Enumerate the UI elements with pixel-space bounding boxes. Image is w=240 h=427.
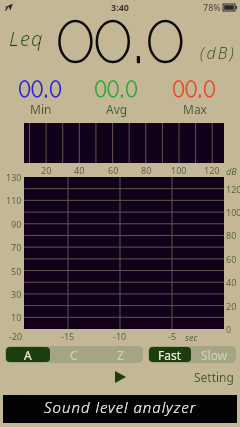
staticText: 70 bbox=[11, 241, 22, 253]
staticText: 0 bbox=[226, 323, 232, 335]
staticText: Z bbox=[117, 347, 124, 363]
button[interactable]: Fast bbox=[149, 347, 191, 362]
staticText: 120 bbox=[226, 183, 240, 195]
staticText: 40 bbox=[74, 164, 85, 176]
button[interactable]: Start measuring bbox=[108, 366, 132, 388]
staticText: 110 bbox=[6, 194, 22, 206]
staticText: 3:40 bbox=[111, 1, 129, 13]
staticText: Avg bbox=[106, 101, 128, 117]
staticText: Sound level analyzer bbox=[44, 397, 197, 417]
staticText: (dB) bbox=[200, 42, 237, 64]
button[interactable]: Z bbox=[97, 346, 143, 363]
staticText: 78% bbox=[203, 1, 221, 13]
staticText: 130 bbox=[6, 171, 22, 183]
staticText: dB bbox=[226, 165, 237, 177]
staticText: 100 bbox=[226, 206, 240, 218]
staticText: Leq bbox=[9, 25, 44, 52]
staticText: -20 bbox=[9, 330, 23, 342]
staticText: Min bbox=[30, 101, 52, 117]
button[interactable]: Sound level analyzer bbox=[3, 395, 237, 423]
button[interactable]: Slow bbox=[192, 346, 236, 363]
staticText: -5 bbox=[168, 330, 177, 342]
staticText: 20 bbox=[41, 164, 52, 176]
staticText: 80 bbox=[226, 229, 237, 241]
staticText: -10 bbox=[113, 330, 127, 342]
staticText: 100 bbox=[171, 164, 187, 176]
staticText: sec bbox=[185, 331, 198, 343]
staticText: Setting bbox=[194, 369, 234, 385]
staticText: 90 bbox=[11, 218, 22, 230]
button[interactable]: Setting bbox=[188, 367, 240, 387]
staticText: 40 bbox=[226, 276, 237, 288]
staticText: 80 bbox=[141, 164, 152, 176]
staticText: -15 bbox=[61, 330, 75, 342]
staticText: 50 bbox=[11, 265, 22, 277]
staticText: 60 bbox=[226, 253, 237, 265]
staticText: 10 bbox=[11, 311, 22, 323]
staticText: A bbox=[24, 347, 32, 362]
staticText: Slow bbox=[201, 347, 228, 363]
staticText: 30 bbox=[11, 288, 22, 300]
staticText: 60 bbox=[108, 164, 119, 176]
staticText: Fast bbox=[158, 347, 182, 362]
staticText: Max bbox=[183, 101, 207, 117]
staticText: 120 bbox=[204, 164, 220, 176]
staticText: 20 bbox=[226, 300, 237, 312]
button[interactable]: A bbox=[6, 347, 50, 362]
button[interactable]: C bbox=[51, 346, 97, 363]
staticText: C bbox=[70, 347, 78, 363]
